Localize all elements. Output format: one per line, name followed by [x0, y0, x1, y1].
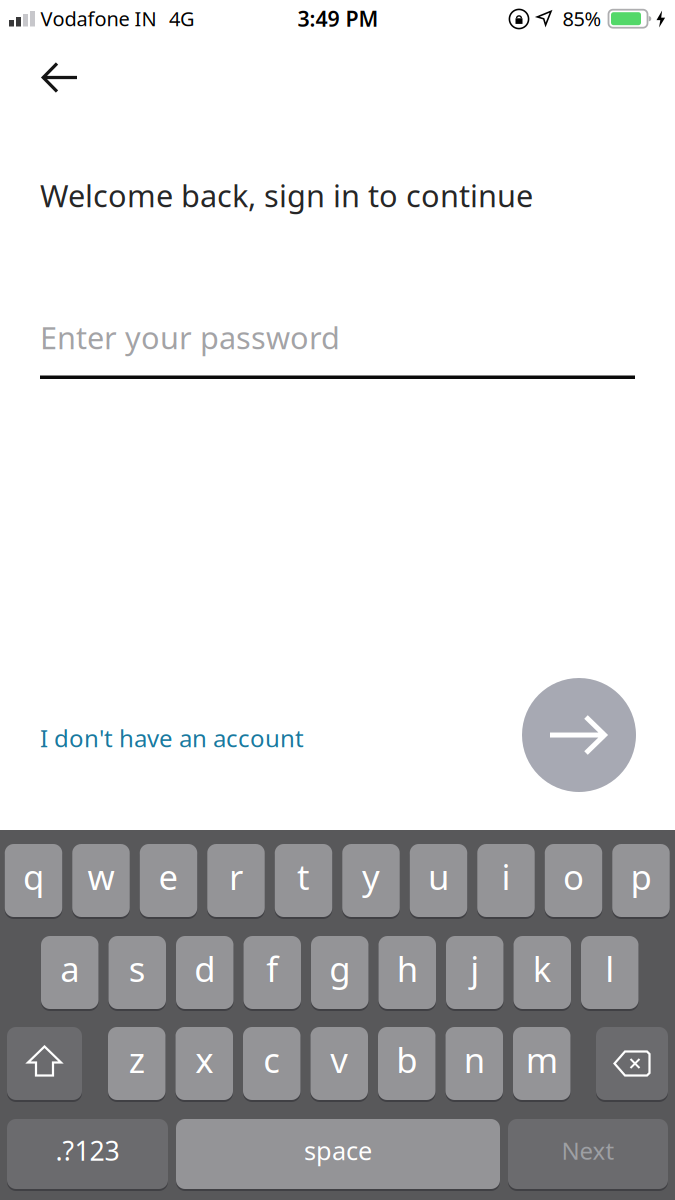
button[interactable]: m — [513, 1027, 570, 1102]
button[interactable]: d — [176, 936, 233, 1011]
button[interactable]: e — [140, 844, 197, 919]
staticText: i — [501, 853, 510, 899]
button[interactable] — [7, 1027, 82, 1102]
button[interactable]: q — [5, 844, 62, 919]
staticText: o — [563, 853, 584, 899]
button[interactable]: g — [311, 936, 368, 1011]
button[interactable]: p — [612, 844, 670, 919]
staticText: y — [362, 853, 380, 899]
staticText: b — [396, 1036, 417, 1082]
staticText: Enter your password — [40, 317, 340, 358]
button[interactable]: h — [378, 936, 436, 1011]
staticText: h — [397, 945, 418, 991]
staticText: v — [330, 1036, 348, 1082]
button[interactable]: f — [243, 936, 301, 1011]
button[interactable] — [32, 52, 88, 103]
button[interactable]: n — [445, 1027, 503, 1102]
button[interactable] — [596, 1027, 668, 1102]
staticText: I don't have an account — [40, 722, 304, 754]
staticText: t — [297, 853, 310, 899]
staticText: g — [329, 945, 350, 991]
button[interactable]: v — [310, 1027, 368, 1102]
button[interactable]: i — [477, 844, 535, 919]
staticText: Vodafone IN — [40, 5, 156, 32]
staticText: l — [605, 945, 614, 991]
button[interactable]: b — [378, 1027, 435, 1102]
button[interactable]: r — [207, 844, 265, 919]
button[interactable]: s — [108, 936, 166, 1011]
button[interactable]: u — [410, 844, 467, 919]
staticText: n — [464, 1036, 485, 1082]
staticText: z — [129, 1036, 145, 1082]
staticText: r — [229, 853, 243, 899]
staticText: 3:49 PM — [297, 4, 378, 33]
staticText: s — [129, 945, 146, 991]
button[interactable]: space — [176, 1119, 500, 1191]
button[interactable]: c — [243, 1027, 300, 1102]
staticText: w — [87, 853, 114, 899]
staticText: f — [266, 945, 278, 991]
staticText: 4G — [169, 5, 195, 32]
button[interactable]: w — [72, 844, 130, 919]
button[interactable]: k — [513, 936, 571, 1011]
staticText: k — [533, 945, 552, 991]
staticText: x — [195, 1036, 213, 1082]
button[interactable]: t — [275, 844, 332, 919]
staticText: space — [304, 1134, 372, 1167]
button[interactable]: Next — [508, 1119, 668, 1191]
staticText: e — [158, 853, 178, 899]
staticText: a — [60, 945, 79, 991]
staticText: p — [630, 853, 651, 899]
staticText: m — [526, 1036, 558, 1082]
button[interactable]: I don't have an account — [40, 722, 304, 754]
button[interactable]: j — [446, 936, 503, 1011]
staticText: u — [428, 853, 449, 899]
staticText: Next — [561, 1135, 614, 1166]
staticText: j — [470, 945, 479, 991]
staticText: 85% — [562, 5, 601, 32]
button[interactable]: a — [41, 936, 98, 1011]
button[interactable]: x — [175, 1027, 233, 1102]
button[interactable]: z — [108, 1027, 165, 1102]
button[interactable]: .?123 — [7, 1119, 168, 1191]
staticText: Welcome back, sign in to continue — [40, 175, 533, 216]
button[interactable]: l — [581, 936, 638, 1011]
staticText: d — [194, 945, 215, 991]
staticText: .?123 — [55, 1133, 119, 1168]
button[interactable]: Enter your password — [40, 317, 635, 379]
button[interactable]: o — [545, 844, 602, 919]
staticText: c — [263, 1036, 280, 1082]
staticText: q — [23, 853, 44, 899]
button[interactable] — [522, 678, 636, 792]
button[interactable]: y — [342, 844, 400, 919]
